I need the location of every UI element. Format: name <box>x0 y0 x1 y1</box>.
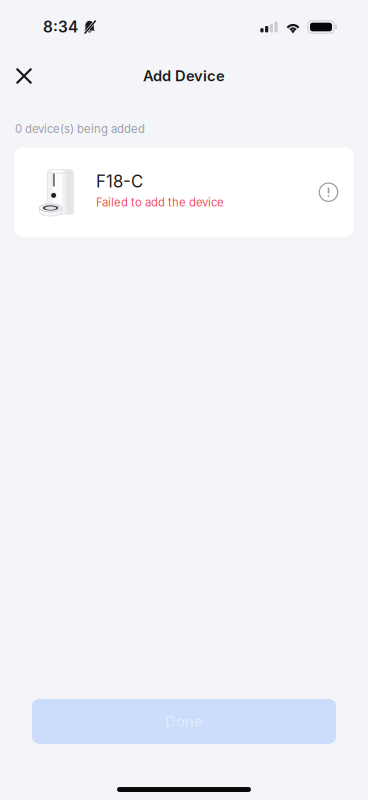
staticText: F18-C <box>96 171 143 191</box>
staticText: 8:34 <box>43 18 78 36</box>
staticText: Add Device <box>143 67 225 85</box>
button[interactable]: Error details <box>319 183 354 202</box>
staticText: Done <box>165 713 203 730</box>
button[interactable]: Close <box>2 54 46 98</box>
staticText: Failed to add the device <box>96 195 224 209</box>
staticText: 0 device(s) being added <box>15 122 145 136</box>
